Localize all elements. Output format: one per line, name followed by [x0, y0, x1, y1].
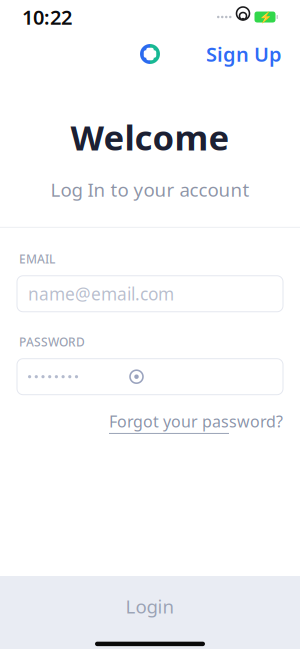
staticText: 10:22 [22, 4, 72, 30]
staticText: name@email.com [28, 282, 174, 305]
staticText: ⚡ [258, 11, 271, 23]
staticText: PASSWORD [19, 334, 85, 350]
button[interactable]: Sign Up [192, 31, 296, 77]
button[interactable]: Login [0, 571, 300, 642]
button[interactable]: Show password [123, 363, 150, 390]
staticText: Welcome [70, 114, 229, 160]
staticText: Log In to your account [50, 177, 249, 202]
staticText: EMAIL [19, 251, 55, 267]
staticText: Sign Up [206, 41, 282, 67]
button[interactable]: Forgot your password? [109, 405, 283, 440]
staticText: Forgot your password? [109, 411, 283, 432]
staticText: Login [125, 594, 174, 619]
